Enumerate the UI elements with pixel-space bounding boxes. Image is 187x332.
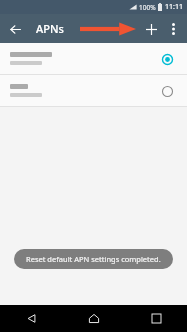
button[interactable]: Home [63,305,125,332]
button[interactable]: Selected APN [0,43,187,74]
staticText: APNs [36,21,64,36]
button[interactable]: Add APN [141,19,161,39]
button[interactable]: Back [0,305,63,332]
staticText: Reset default APN settings completed. [26,254,161,264]
button[interactable]: Select APN [0,75,187,106]
button[interactable]: Recent apps [125,305,187,332]
staticText: 100% [139,3,156,12]
staticText: 11:11 [165,2,183,12]
button[interactable]: Selected APN [157,49,177,69]
button[interactable]: Select APN [157,81,177,101]
button[interactable]: More options [164,20,182,38]
button[interactable]: Back [6,20,24,38]
